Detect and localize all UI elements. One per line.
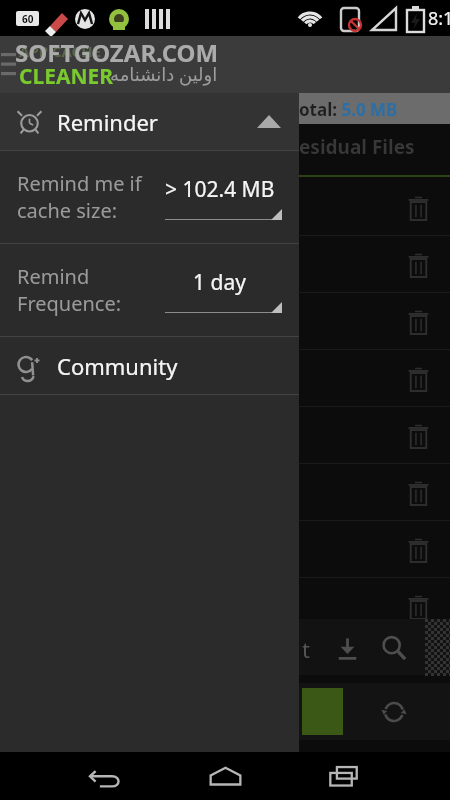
staticText: > 102.4 MB <box>165 175 275 204</box>
staticText: اولین دانشنامه <box>110 62 218 87</box>
staticText: 8:19 <box>428 6 450 31</box>
button[interactable]: Back <box>74 752 136 800</box>
staticText: cache size: <box>17 197 118 224</box>
button[interactable]: Delete <box>299 578 450 635</box>
button[interactable]: Recents <box>314 752 376 800</box>
button[interactable]: Community <box>0 337 299 394</box>
staticText: Remind me if <box>17 170 142 197</box>
button[interactable]: Delete <box>299 350 450 407</box>
staticText: 1 day <box>193 268 246 297</box>
button[interactable]: Delete <box>299 521 450 578</box>
staticText: esidual Files <box>299 134 415 160</box>
staticText: APP CACHE <box>19 41 102 61</box>
staticText: Remind <box>17 263 90 290</box>
button[interactable]: Sort <box>331 632 363 664</box>
other: Delete <box>402 363 434 395</box>
other: Delete <box>402 591 434 623</box>
other: Delete <box>402 477 434 509</box>
button[interactable]: Delete <box>299 464 450 521</box>
button[interactable]: Delete <box>299 407 450 464</box>
button[interactable]: Delete <box>299 179 450 236</box>
other: Delete <box>402 534 434 566</box>
other: Delete <box>402 192 434 224</box>
other: Delete <box>402 420 434 452</box>
staticText: t <box>302 634 310 664</box>
button[interactable]: Remind me if <box>0 151 299 243</box>
staticText: Community <box>57 351 178 381</box>
button[interactable]: Reminder <box>0 93 299 150</box>
staticText: CLEANER <box>19 62 114 91</box>
staticText: Reminder <box>57 107 158 137</box>
staticText: otal: 5.0 MB <box>299 98 398 121</box>
other: Delete <box>402 306 434 338</box>
button[interactable]: Delete <box>299 236 450 293</box>
staticText: 60 <box>22 12 34 26</box>
button[interactable]: Remind <box>0 244 299 336</box>
other: Delete <box>402 249 434 281</box>
button[interactable]: Refresh <box>376 694 412 730</box>
staticText: Frequence: <box>17 290 122 317</box>
staticText: SOFTGOZAR.COM <box>15 36 219 69</box>
button[interactable]: Delete <box>299 293 450 350</box>
button[interactable]: Search <box>377 631 411 665</box>
button[interactable]: Home <box>194 752 256 800</box>
